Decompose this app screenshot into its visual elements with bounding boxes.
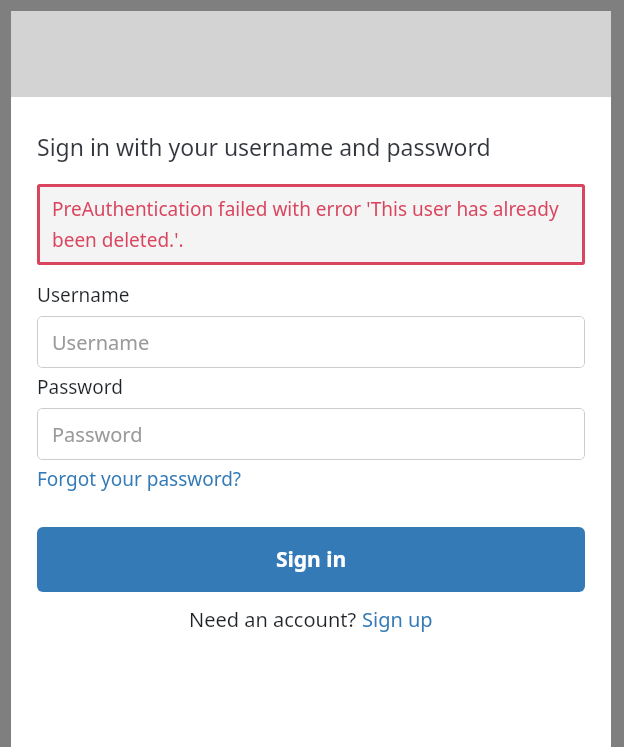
- staticText: Forgot your password?: [37, 466, 242, 492]
- staticText: Password: [52, 421, 143, 448]
- staticText: Username: [52, 329, 150, 356]
- staticText: Need an account?: [189, 606, 362, 633]
- staticText: Sign in with your username and password: [37, 131, 491, 162]
- button[interactable]: Sign up: [362, 606, 433, 633]
- button[interactable]: Username input: [37, 316, 585, 368]
- staticText: Username: [37, 282, 130, 308]
- staticText: Sign in: [276, 545, 347, 574]
- staticText: Password: [37, 374, 123, 400]
- button[interactable]: Forgot your password?: [37, 466, 242, 492]
- button[interactable]: Password input: [37, 408, 585, 460]
- staticText: Sign up: [362, 606, 433, 633]
- staticText: PreAuthentication failed with error 'Thi…: [52, 196, 570, 253]
- button[interactable]: Sign in: [37, 527, 585, 592]
